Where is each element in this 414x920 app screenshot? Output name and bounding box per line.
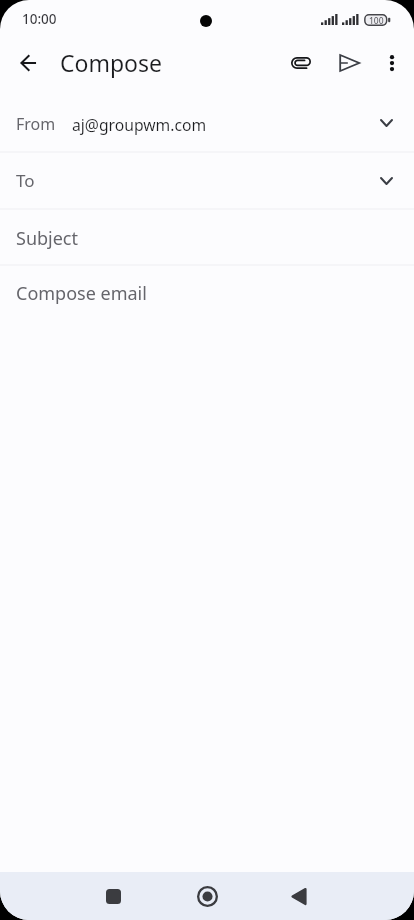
- button[interactable]: Subject: [0, 210, 414, 264]
- button[interactable]: Send: [327, 41, 371, 85]
- button[interactable]: Compose email: [0, 266, 414, 322]
- button[interactable]: From: [0, 95, 414, 151]
- button[interactable]: Back: [275, 872, 323, 920]
- staticText: Compose email: [16, 281, 147, 306]
- button[interactable]: Attach file: [279, 41, 323, 85]
- staticText: To: [16, 169, 35, 192]
- button[interactable]: More options: [370, 41, 414, 85]
- button[interactable]: Home: [183, 872, 231, 920]
- staticText: 10:00: [22, 10, 57, 28]
- staticText: Compose: [60, 47, 163, 78]
- button[interactable]: Recent apps: [89, 872, 137, 920]
- staticText: Subject: [16, 226, 79, 251]
- staticText: 100: [369, 15, 384, 27]
- staticText: From: [16, 113, 56, 135]
- staticText: aj@groupwm.com: [72, 114, 207, 135]
- button[interactable]: To: [0, 153, 414, 208]
- button[interactable]: Navigate up: [8, 43, 48, 83]
